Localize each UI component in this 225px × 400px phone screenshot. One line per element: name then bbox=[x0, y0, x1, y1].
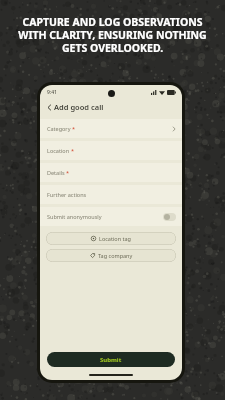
button[interactable]: Category bbox=[40, 119, 182, 138]
button[interactable]: Further actions bbox=[40, 185, 182, 204]
button[interactable]: Submit anonymously bbox=[40, 207, 182, 226]
button[interactable]: Tag company bbox=[46, 249, 176, 262]
button[interactable]: Details bbox=[40, 163, 182, 182]
staticText: * bbox=[72, 125, 76, 132]
staticText: Location tag bbox=[99, 235, 131, 242]
staticText: Details bbox=[47, 169, 65, 176]
staticText: Tag company bbox=[98, 252, 133, 259]
staticText: Submit bbox=[100, 356, 122, 364]
staticText: * bbox=[66, 169, 70, 176]
button[interactable]: Submit bbox=[47, 352, 175, 367]
staticText: Submit anonymously bbox=[47, 213, 102, 220]
staticText: * bbox=[71, 147, 75, 154]
staticText: Location bbox=[47, 147, 70, 154]
button[interactable]: Back bbox=[45, 103, 53, 111]
staticText: CAPTURE AND LOG OBSERVATIONS WITH CLARIT… bbox=[18, 15, 207, 55]
button[interactable]: Location tag bbox=[46, 232, 176, 245]
button[interactable]: Location bbox=[40, 141, 182, 160]
staticText: Further actions bbox=[47, 191, 87, 198]
staticText: Add good call bbox=[54, 102, 104, 112]
button[interactable]: Back bbox=[40, 99, 182, 115]
staticText: Category bbox=[47, 125, 71, 132]
staticText: 9:41 bbox=[47, 89, 57, 96]
